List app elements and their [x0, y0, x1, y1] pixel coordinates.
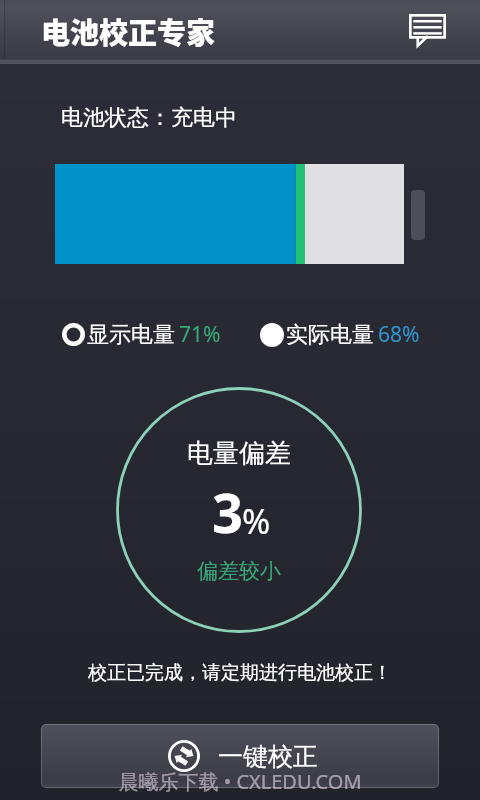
- button[interactable]: Messages: [403, 9, 450, 53]
- staticText: 3: [212, 475, 243, 549]
- staticText: 晨曦乐下载 • CXLEDU.COM: [0, 768, 480, 795]
- staticText: 一键校正: [218, 741, 318, 772]
- staticText: 68%: [378, 320, 420, 349]
- button[interactable]: 显示电量: [62, 320, 221, 349]
- staticText: 实际电量: [286, 321, 374, 349]
- staticText: 电量偏差: [187, 437, 291, 470]
- staticText: 显示电量: [87, 321, 175, 349]
- staticText: 71%: [179, 320, 221, 349]
- button[interactable]: 实际电量: [260, 320, 420, 349]
- staticText: 电池状态：充电中: [61, 104, 237, 132]
- staticText: 电池校正专家: [41, 10, 216, 52]
- staticText: 校正已完成，请定期进行电池校正！: [0, 661, 480, 685]
- staticText: 偏差较小: [197, 558, 281, 584]
- staticText: %: [242, 498, 271, 544]
- button[interactable]: 一键校正: [41, 724, 439, 788]
